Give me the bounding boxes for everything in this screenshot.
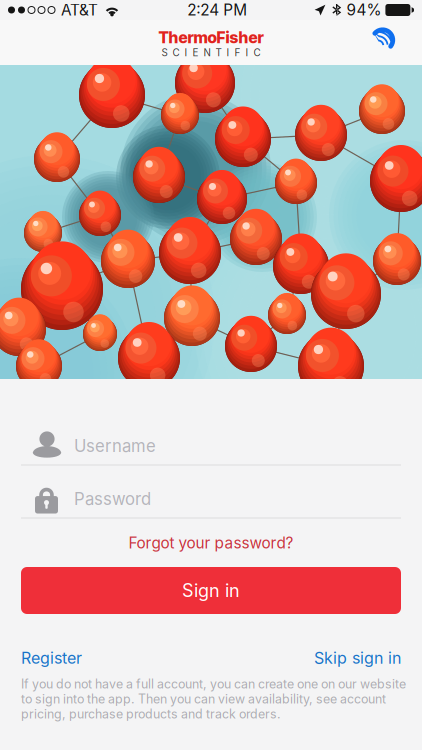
button[interactable]: Sign in <box>21 567 401 614</box>
staticText: If you do not have a full account, you c… <box>21 676 406 721</box>
staticText: AT&T <box>61 1 98 19</box>
staticText: Register <box>21 648 82 668</box>
staticText: 94% <box>346 1 381 19</box>
staticText: Sign in <box>182 580 240 601</box>
button[interactable]: Forgot your password? <box>111 528 311 558</box>
staticText: Skip sign in <box>314 648 401 668</box>
button[interactable]: Skip sign in <box>271 645 401 671</box>
staticText: Forgot your password? <box>128 534 293 552</box>
staticText: 2:24 PM <box>187 1 247 19</box>
button[interactable]: Call support <box>360 20 404 64</box>
staticText: Password <box>74 489 151 509</box>
staticText: S C I E N T I F I C <box>161 47 260 58</box>
button[interactable]: Register <box>21 645 131 671</box>
staticText: ThermoFisher <box>158 28 263 47</box>
staticText: Username <box>74 436 156 456</box>
